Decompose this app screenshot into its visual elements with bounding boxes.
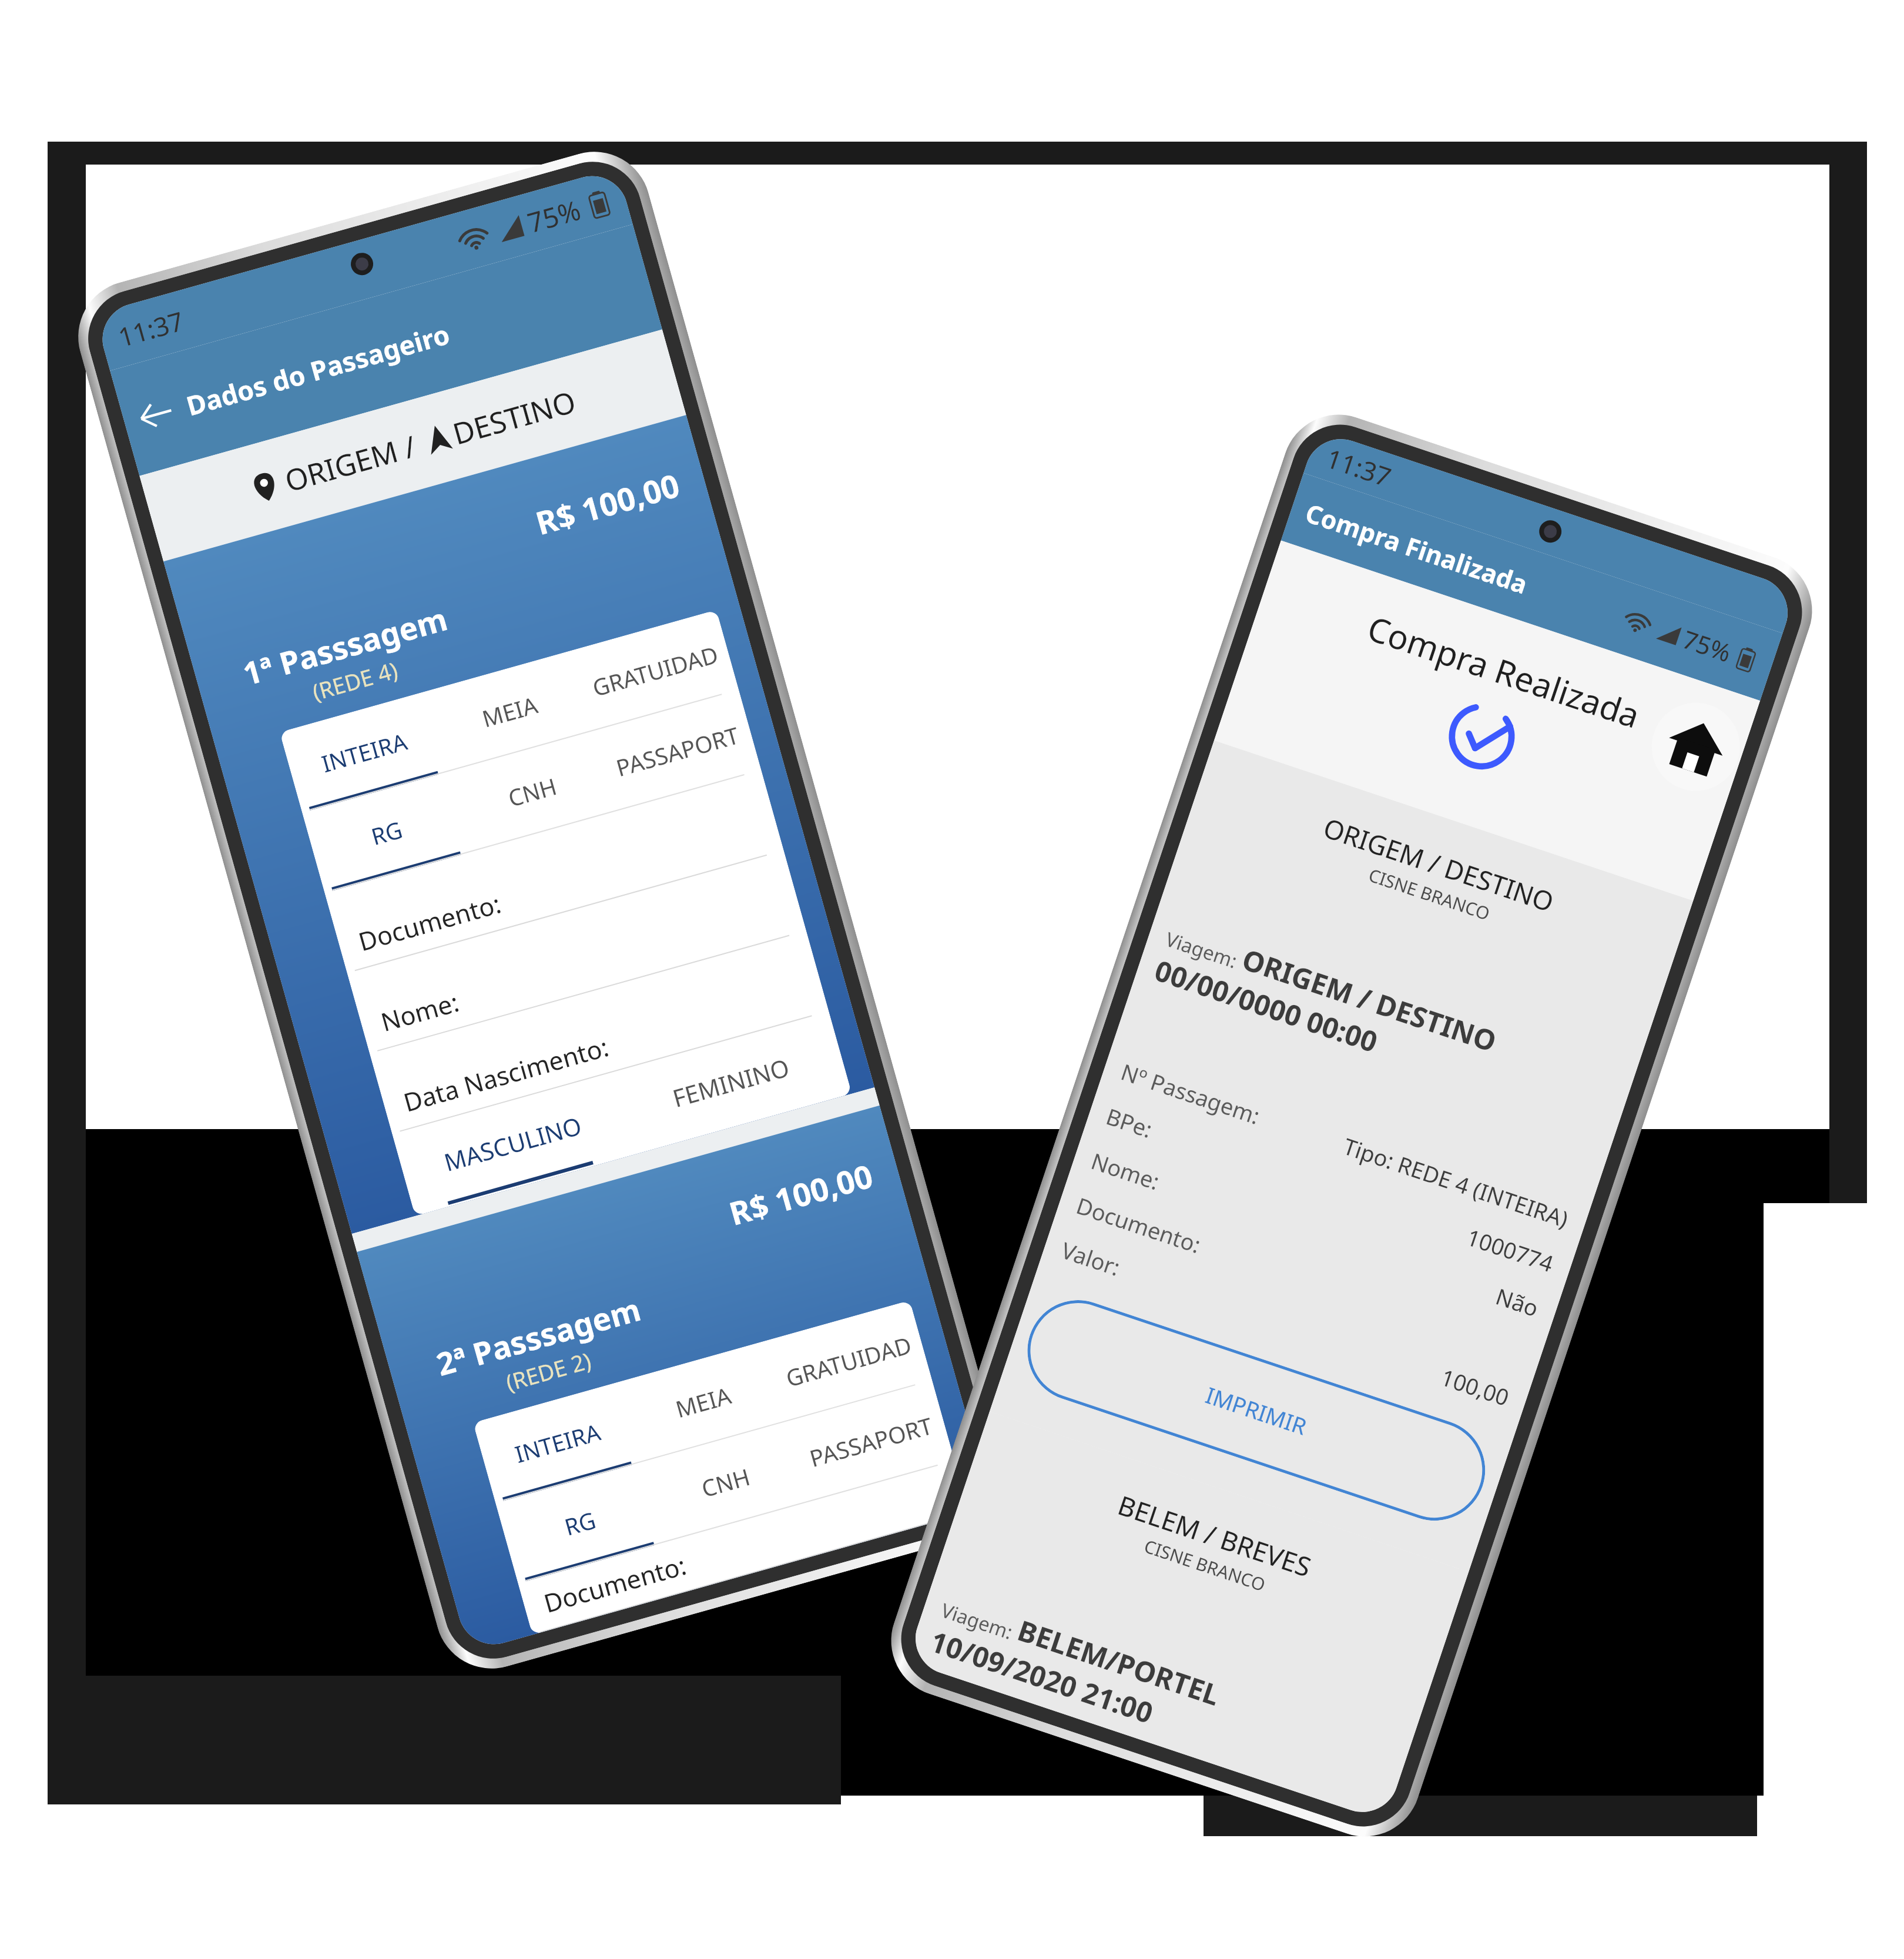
- staticText: CNH: [698, 1460, 754, 1504]
- staticText: ORIGEM / DESTINO: [1319, 809, 1559, 920]
- staticText: Viagem:: [938, 1597, 1021, 1647]
- staticText: BELEM / BREVES: [1113, 1487, 1316, 1585]
- button[interactable]: GRATUIDAD: [764, 1300, 932, 1421]
- staticText: DESTINO: [448, 381, 580, 454]
- staticText: MEIA: [672, 1379, 735, 1424]
- button[interactable]: PASSAPORT: [593, 690, 761, 811]
- staticText: CISNE BRANCO: [1366, 863, 1493, 926]
- button[interactable]: Home: [1640, 691, 1752, 803]
- staticText: 2ª Passsagem: [431, 1287, 645, 1385]
- button[interactable]: Back: [110, 353, 202, 476]
- staticText: Valor:: [1058, 1234, 1125, 1283]
- button[interactable]: CNH: [641, 1421, 809, 1543]
- staticText: Documento:: [1073, 1190, 1205, 1260]
- staticText: INTEIRA: [511, 1416, 604, 1469]
- button[interactable]: MEIA: [426, 651, 593, 772]
- button[interactable]: INTEIRA: [280, 610, 852, 1216]
- button[interactable]: RG: [302, 772, 471, 893]
- staticText: Documento:: [354, 886, 505, 959]
- staticText: Nº Passagem:: [1117, 1056, 1264, 1131]
- button[interactable]: RG: [495, 1462, 664, 1583]
- staticText: 10/09/2020 21:00: [926, 1622, 1158, 1732]
- staticText: Dados do Passageiro: [182, 316, 454, 423]
- staticText: 11:37: [114, 303, 188, 355]
- staticText: 100,00: [1437, 1361, 1513, 1413]
- staticText: 75%: [523, 191, 585, 241]
- staticText: Documento:: [540, 1548, 690, 1620]
- staticText: RG: [561, 1504, 599, 1542]
- staticText: 75%: [1679, 622, 1736, 669]
- staticText: Não: [1492, 1281, 1543, 1323]
- staticText: 00/00/0000 00:00: [1150, 951, 1383, 1061]
- staticText: IMPRIMIR: [1202, 1379, 1311, 1441]
- staticText: GRATUIDAD: [782, 1329, 915, 1393]
- staticText: MEIA: [479, 689, 541, 734]
- staticText: Data Nascimento:: [399, 1029, 613, 1120]
- staticText: Viagem:: [1162, 926, 1246, 976]
- staticText: BELEM/PORTEL: [1013, 1611, 1225, 1714]
- staticText: MASCULINO: [440, 1109, 585, 1178]
- staticText: (REDE 4): [309, 654, 401, 707]
- staticText: Nome:: [1087, 1145, 1164, 1197]
- staticText: 1000774: [1463, 1221, 1558, 1279]
- staticText: GRATUIDAD: [589, 638, 722, 703]
- staticText: Tipo: REDE 4 (INTEIRA): [1340, 1130, 1573, 1234]
- staticText: (REDE 2): [502, 1344, 595, 1398]
- button[interactable]: BELEM / BREVES: [906, 1412, 1469, 1822]
- button[interactable]: INTEIRA: [473, 1300, 969, 1635]
- staticText: RG: [367, 813, 406, 852]
- staticText: Nome:: [377, 984, 463, 1039]
- staticText: ORIGEM /: [280, 426, 421, 501]
- staticText: R$ 100,00: [531, 463, 684, 544]
- button[interactable]: GRATUIDAD: [571, 610, 739, 731]
- button[interactable]: PASSAPORT: [787, 1381, 955, 1502]
- staticText: 11:37: [1322, 440, 1396, 495]
- staticText: 1ª Passsagem: [238, 597, 452, 694]
- staticText: R$ 100,00: [724, 1153, 878, 1235]
- button[interactable]: Back: [110, 224, 662, 476]
- button[interactable]: INTEIRA: [473, 1382, 641, 1503]
- button[interactable]: MEIA: [619, 1341, 787, 1462]
- staticText: Compra Realizada: [1362, 605, 1646, 738]
- staticText: CNH: [504, 770, 560, 813]
- staticText: Compra Finalizada: [1301, 495, 1532, 602]
- button[interactable]: IMPRIMIR: [1014, 1287, 1499, 1534]
- button[interactable]: FEMININO: [611, 1012, 851, 1153]
- button[interactable]: INTEIRA: [280, 691, 448, 813]
- staticText: CISNE BRANCO: [1141, 1534, 1269, 1597]
- button[interactable]: CNH: [448, 731, 616, 852]
- button[interactable]: ORIGEM / DESTINO: [989, 740, 1693, 1572]
- staticText: ORIGEM / DESTINO: [1237, 940, 1502, 1060]
- staticText: FEMININO: [669, 1050, 793, 1114]
- staticText: BPe:: [1102, 1101, 1157, 1144]
- button[interactable]: MASCULINO: [392, 1073, 633, 1214]
- staticText: PASSAPORT: [613, 719, 743, 783]
- staticText: INTEIRA: [318, 725, 411, 779]
- staticText: PASSAPORT: [806, 1409, 936, 1474]
